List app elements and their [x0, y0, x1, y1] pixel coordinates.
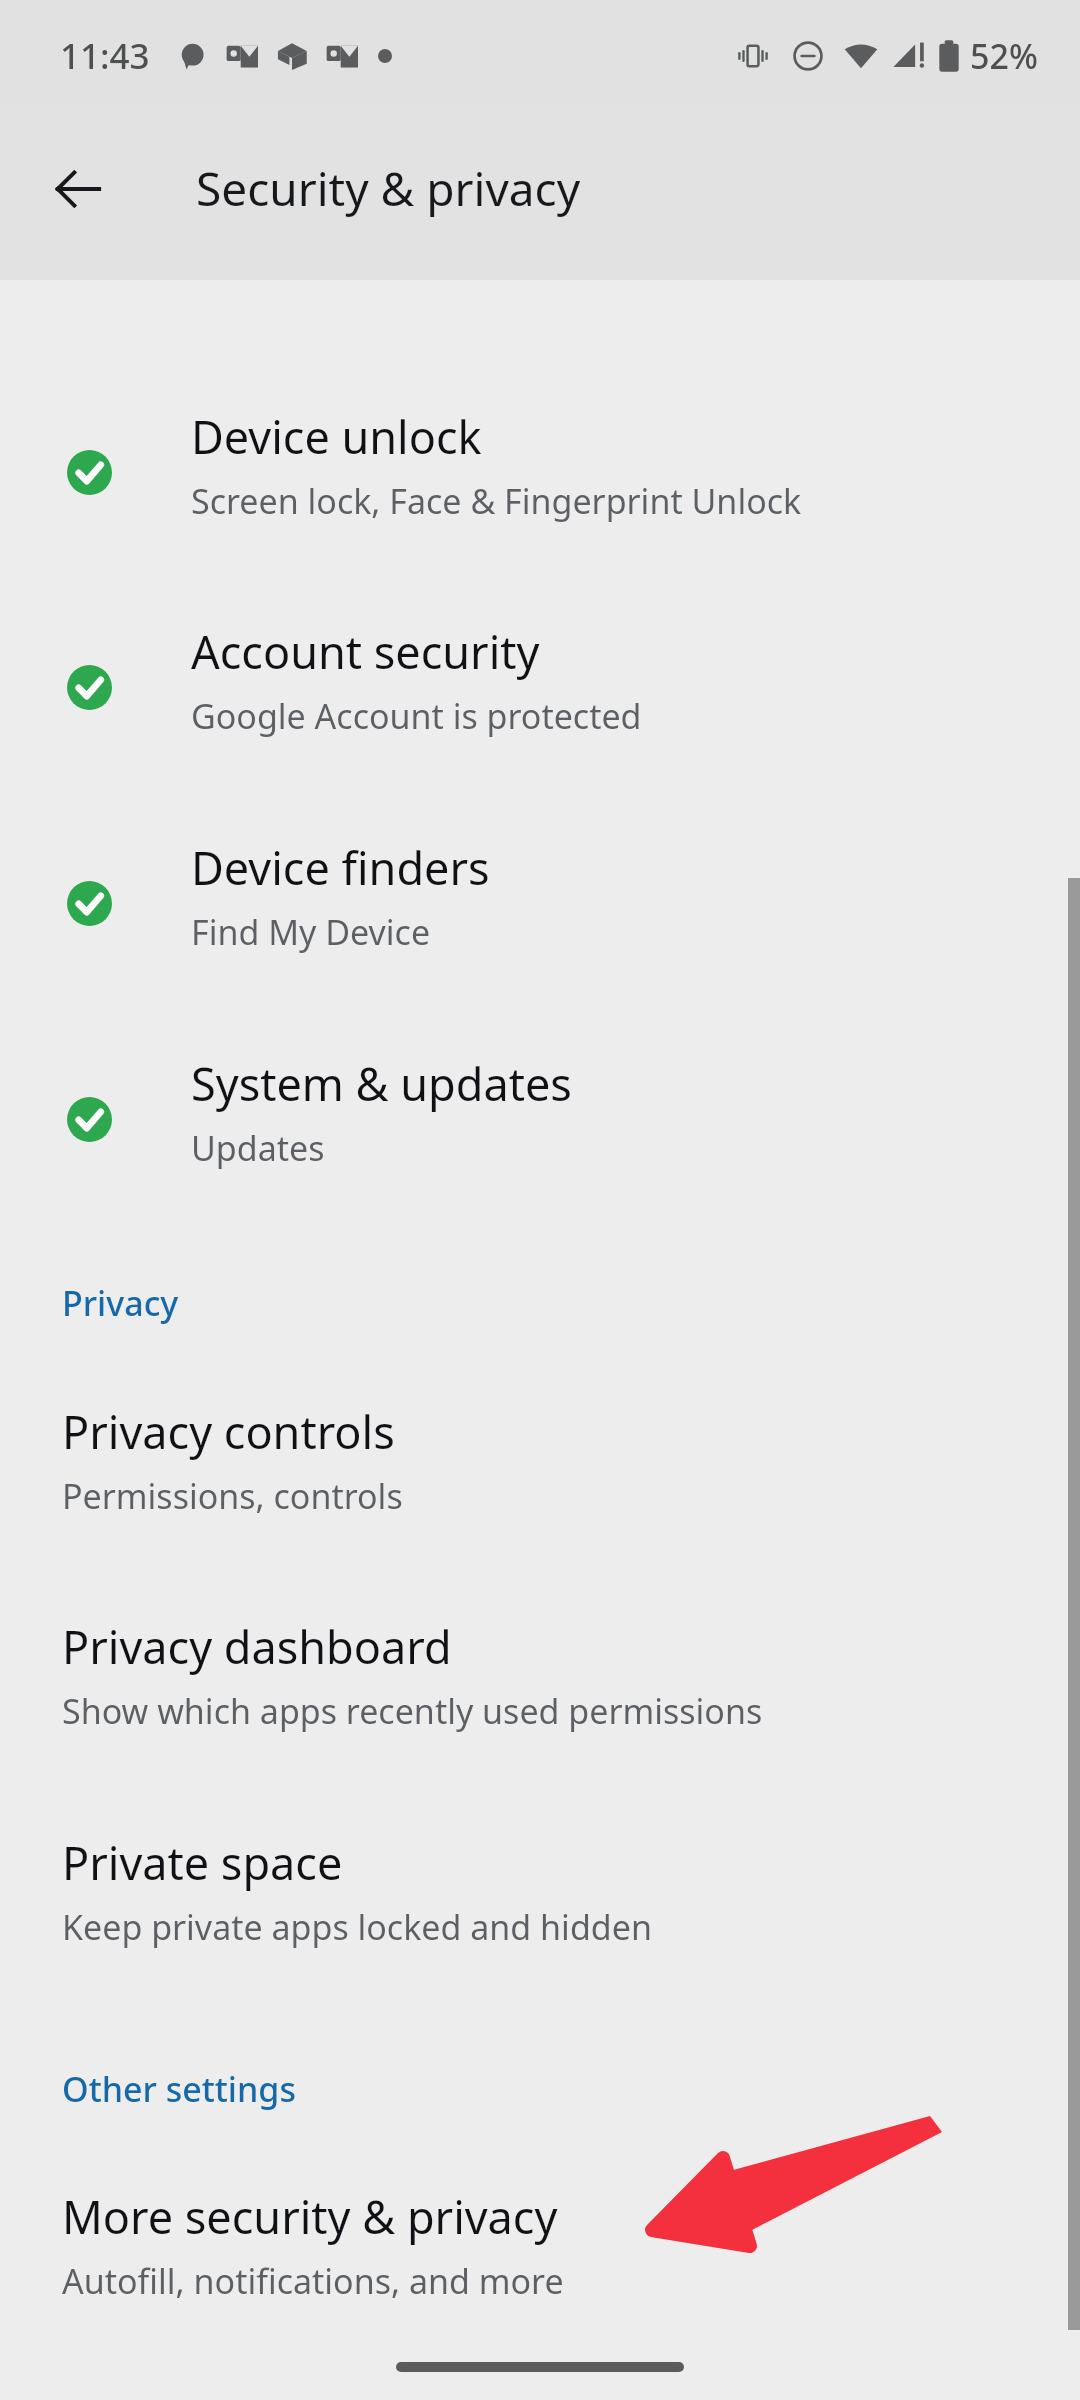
staticText: System & updates	[191, 1053, 572, 1114]
staticText: Account security	[191, 621, 540, 682]
button[interactable]: Privacy controls	[0, 1383, 1080, 1569]
staticText: Security & privacy	[196, 157, 581, 220]
staticText: Other settings	[62, 2066, 296, 2112]
staticText: Permissions, controls	[62, 1473, 403, 1519]
staticText: Device unlock	[191, 406, 482, 467]
staticText: Privacy controls	[62, 1401, 395, 1462]
staticText: Device finders	[191, 837, 490, 898]
staticText: Privacy dashboard	[62, 1616, 452, 1677]
button[interactable]: Device unlock	[0, 388, 1080, 574]
staticText: Find My Device	[191, 909, 431, 955]
staticText: Screen lock, Face & Fingerprint Unlock	[191, 478, 802, 524]
button[interactable]: Private space	[0, 1814, 1080, 2000]
staticText: Updates	[191, 1125, 325, 1171]
staticText: More security & privacy	[62, 2186, 558, 2247]
staticText: Privacy	[62, 1280, 179, 1326]
button[interactable]: Account security	[0, 603, 1080, 789]
staticText: Show which apps recently used permission…	[62, 1688, 763, 1734]
button[interactable]: Device finders	[0, 819, 1080, 1005]
staticText: Autofill, notifications, and more	[62, 2258, 564, 2304]
staticText: Keep private apps locked and hidden	[62, 1904, 652, 1950]
staticText: Private space	[62, 1832, 343, 1893]
button[interactable]: More security & privacy	[0, 2168, 1080, 2354]
staticText: Google Account is protected	[191, 693, 642, 739]
button[interactable]: System & updates	[0, 1035, 1080, 1221]
staticText: 52%	[970, 33, 1038, 79]
staticText: 11:43	[60, 32, 150, 80]
button[interactable]: Back	[30, 141, 126, 237]
button[interactable]: Privacy dashboard	[0, 1598, 1080, 1784]
